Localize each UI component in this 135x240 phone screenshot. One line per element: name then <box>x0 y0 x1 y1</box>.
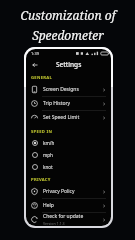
staticText: Screen Designs <box>43 86 79 93</box>
staticText: Set Speed Limit <box>43 114 80 121</box>
staticText: PRIVACY <box>31 177 51 183</box>
button[interactable]: Back <box>29 59 40 70</box>
button[interactable]: Screen Designs <box>26 83 111 96</box>
staticText: km/h <box>43 140 55 146</box>
staticText: Privacy Policy <box>43 188 75 195</box>
staticText: Speedometer <box>32 27 104 43</box>
staticText: GENERAL <box>31 75 53 81</box>
button[interactable]: km/h <box>26 137 111 149</box>
staticText: Check for update <box>43 213 84 220</box>
staticText: Version 1.1.3 <box>43 221 65 226</box>
staticText: SPEED IN <box>31 129 53 135</box>
staticText: Customization of <box>20 7 116 23</box>
button[interactable]: Help <box>26 199 111 212</box>
button[interactable]: mph <box>26 149 111 161</box>
staticText: Trip History <box>43 100 71 107</box>
button[interactable]: knot <box>26 161 111 173</box>
button[interactable]: Trip History <box>26 97 111 110</box>
staticText: 1:39 <box>31 51 39 56</box>
button[interactable]: Privacy Policy <box>26 185 111 198</box>
staticText: knot <box>43 164 53 170</box>
staticText: Settings <box>56 60 82 69</box>
button[interactable]: Set Speed Limit <box>26 111 111 124</box>
staticText: Help <box>43 202 54 209</box>
staticText: mph <box>43 152 53 158</box>
button[interactable]: Check for update <box>26 213 111 226</box>
